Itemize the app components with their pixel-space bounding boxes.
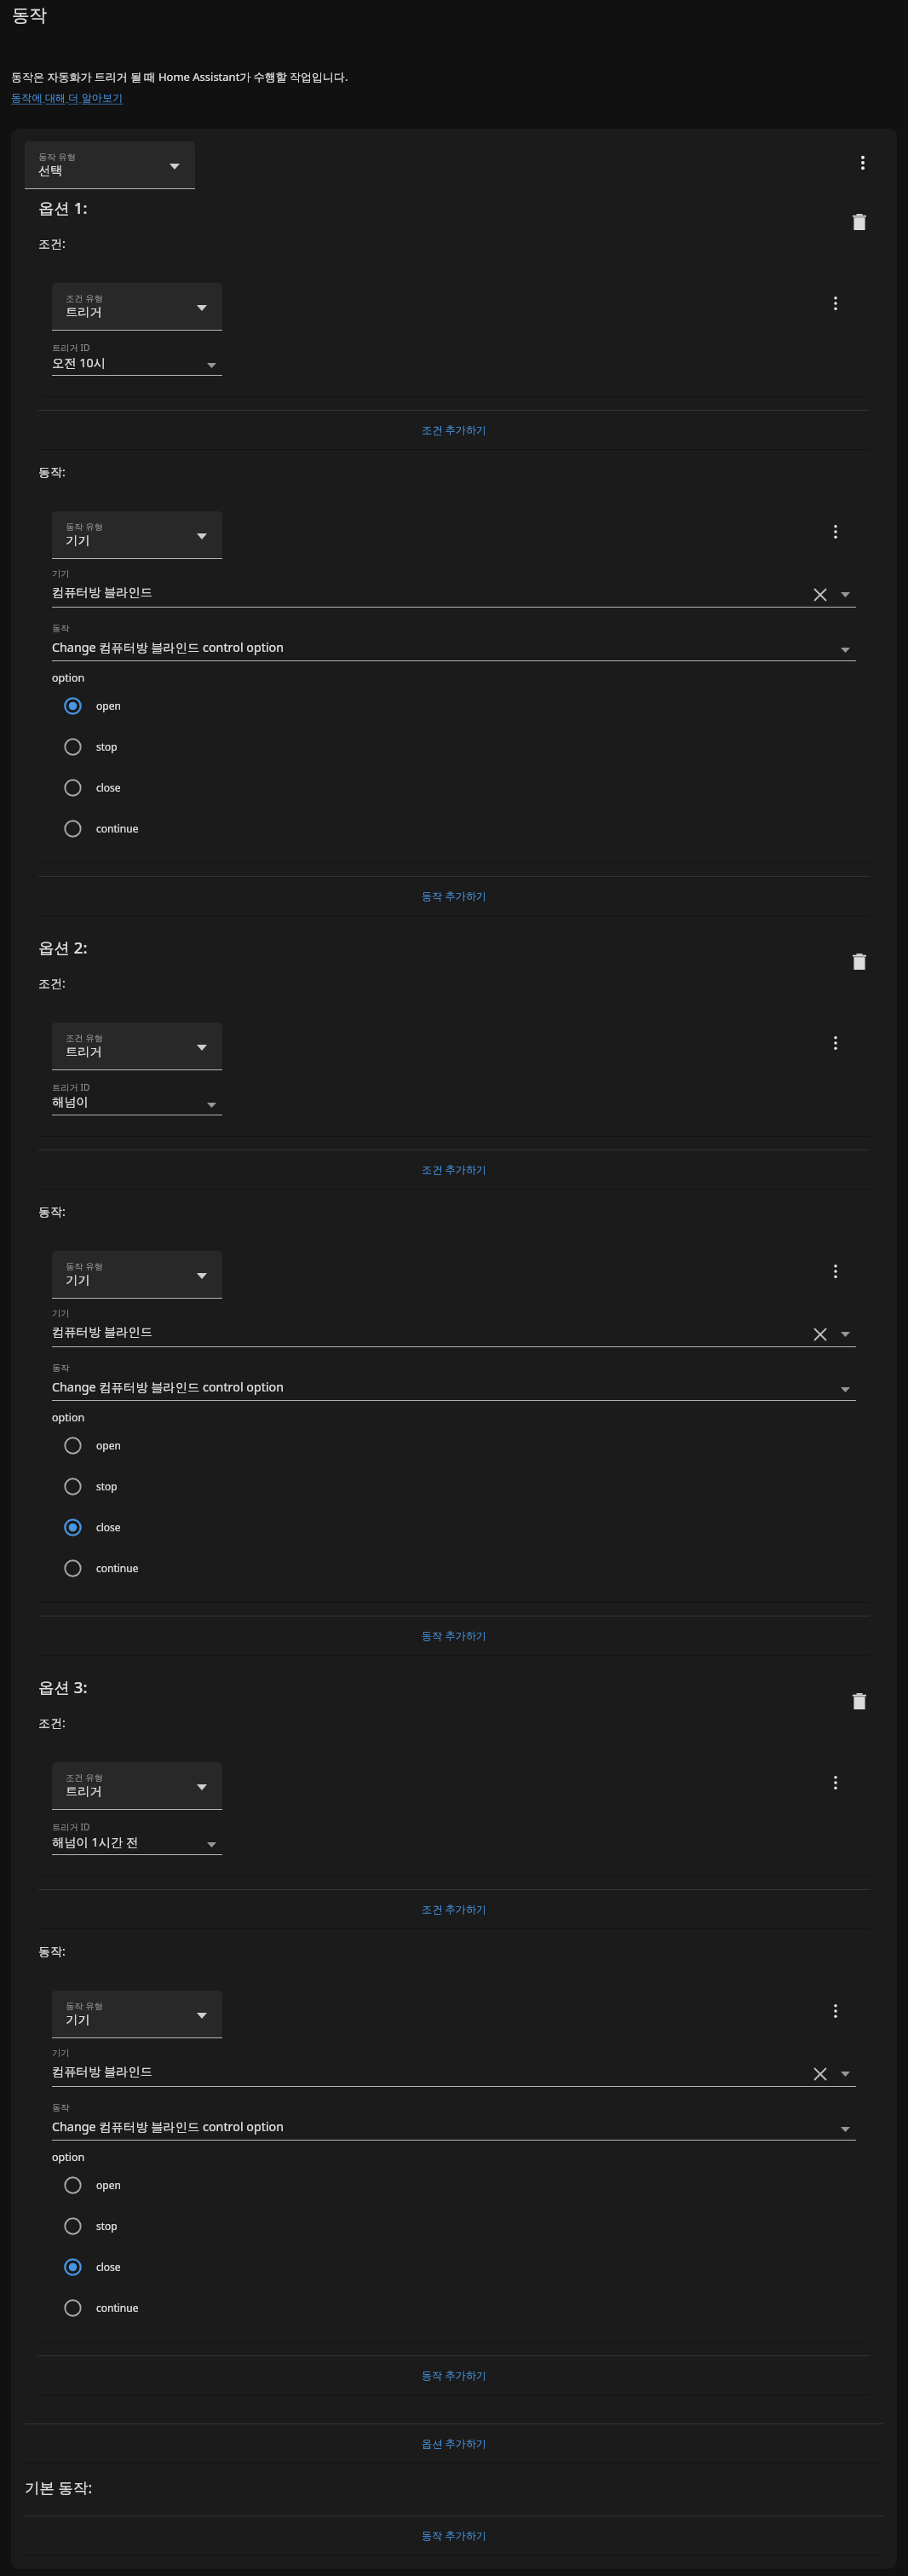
staticText: 기기 [52, 1308, 70, 1319]
staticText: 동작: [38, 1943, 66, 1959]
staticText: 조건 유형 [66, 1032, 103, 1044]
staticText: 선택 [38, 163, 63, 178]
button[interactable]: 기기 [52, 1308, 856, 1347]
button[interactable]: stop [52, 1466, 883, 1507]
button[interactable]: 조건 추가하기 [38, 1150, 870, 1189]
button[interactable]: 동작 유형 [52, 511, 222, 559]
staticText: 조건 추가하기 [422, 423, 487, 437]
staticText: 동작 유형 [66, 1260, 103, 1272]
button[interactable]: 기기 [52, 568, 856, 608]
staticText: Change 컴퓨터방 블라인드 control option [52, 2118, 284, 2135]
staticText: stop [96, 740, 118, 753]
button[interactable]: More options [821, 289, 850, 318]
button[interactable]: 동작 [52, 1363, 856, 1401]
staticText: 조건: [38, 235, 66, 251]
staticText: option [52, 1410, 85, 1425]
button[interactable]: 동작에 대해 더 알아보기 [11, 90, 124, 105]
button[interactable]: More options [821, 1257, 850, 1286]
staticText: 트리거 ID [52, 1081, 90, 1093]
staticText: continue [96, 821, 139, 835]
button[interactable]: continue [52, 1547, 883, 1588]
button[interactable]: Delete [845, 1686, 874, 1715]
button[interactable]: 기기 [52, 2048, 856, 2087]
staticText: stop [96, 2219, 118, 2233]
button[interactable]: 동작 추가하기 [38, 877, 870, 915]
staticText: stop [96, 1479, 118, 1493]
button[interactable]: open [52, 685, 883, 726]
button[interactable]: 조건 추가하기 [38, 1890, 870, 1928]
button[interactable]: 동작 추가하기 [38, 1616, 870, 1655]
button[interactable]: open [52, 2164, 883, 2205]
staticText: 동작 유형 [66, 521, 103, 533]
staticText: 기기 [66, 2012, 90, 2027]
staticText: 조건 유형 [66, 292, 103, 304]
staticText: 기기 [66, 533, 90, 548]
staticText: 조건 추가하기 [422, 1162, 487, 1177]
staticText: 트리거 [66, 304, 102, 320]
staticText: 동작 유형 [38, 151, 76, 163]
button[interactable]: Delete [845, 947, 874, 976]
staticText: 조건 유형 [66, 1772, 103, 1784]
button[interactable]: 트리거 ID [52, 342, 222, 376]
button[interactable]: More options [821, 1029, 850, 1057]
button[interactable]: close [52, 2246, 883, 2287]
staticText: 오전 10시 [52, 354, 106, 372]
button[interactable]: open [52, 1425, 883, 1466]
staticText: 동작 [52, 623, 70, 634]
staticText: 트리거 ID [52, 1821, 90, 1833]
button[interactable]: 조건 유형 [52, 1023, 222, 1070]
staticText: 동작 [52, 2102, 70, 2113]
button[interactable]: close [52, 1507, 883, 1547]
button[interactable]: More options [821, 1768, 850, 1797]
button[interactable]: 옵션 추가하기 [25, 2424, 883, 2463]
button[interactable]: continue [52, 2287, 883, 2328]
staticText: 옵션 2: [38, 939, 88, 958]
button[interactable]: More options [821, 517, 850, 546]
staticText: 옵션 3: [38, 1679, 88, 1697]
staticText: 조건 추가하기 [422, 1902, 487, 1916]
staticText: open [96, 2178, 121, 2192]
button[interactable]: More options [821, 1997, 850, 2026]
staticText: 동작: [38, 464, 66, 480]
button[interactable]: continue [52, 808, 883, 849]
staticText: 옵션 추가하기 [422, 2436, 487, 2451]
staticText: option [52, 2150, 85, 2164]
staticText: 조건: [38, 1714, 66, 1731]
button[interactable]: 조건 유형 [52, 1762, 222, 1810]
button[interactable]: 동작 추가하기 [38, 2356, 870, 2394]
button[interactable]: 트리거 ID [52, 1821, 222, 1855]
button[interactable]: 동작 유형 [52, 1991, 222, 2038]
button[interactable]: stop [52, 726, 883, 767]
button[interactable]: 동작 유형 [52, 1251, 222, 1299]
button[interactable]: 조건 유형 [52, 283, 222, 331]
staticText: 컴퓨터방 블라인드 [52, 584, 153, 601]
button[interactable]: 동작 추가하기 [25, 2516, 883, 2555]
button[interactable]: 동작 유형 [25, 141, 195, 189]
button[interactable]: More options [848, 148, 877, 177]
button[interactable]: close [52, 767, 883, 808]
staticText: 동작 추가하기 [422, 889, 487, 903]
staticText: 컴퓨터방 블라인드 [52, 2063, 153, 2080]
staticText: 동작은 자동화가 트리거 될 때 Home Assistant가 수행할 작업입… [11, 69, 348, 84]
staticText: continue [96, 2301, 139, 2314]
staticText: 동작 추가하기 [422, 2368, 487, 2383]
button[interactable]: 트리거 ID [52, 1081, 222, 1115]
button[interactable]: Delete [845, 207, 874, 236]
staticText: 기기 [52, 2048, 70, 2059]
staticText: 동작: [38, 1203, 66, 1219]
staticText: 동작 [52, 1363, 70, 1374]
staticText: 트리거 [66, 1784, 102, 1799]
staticText: continue [96, 1561, 139, 1575]
button[interactable]: 동작 [52, 2102, 856, 2141]
staticText: 기기 [52, 568, 70, 579]
staticText: close [96, 781, 121, 794]
button[interactable]: 조건 추가하기 [38, 411, 870, 449]
staticText: 컴퓨터방 블라인드 [52, 1323, 153, 1340]
staticText: 동작 유형 [66, 2000, 103, 2012]
staticText: close [96, 2260, 121, 2273]
button[interactable]: 동작 [52, 623, 856, 661]
staticText: 옵션 1: [38, 199, 88, 218]
staticText: 트리거 ID [52, 342, 90, 354]
staticText: 동작 추가하기 [422, 2528, 487, 2543]
button[interactable]: stop [52, 2205, 883, 2246]
